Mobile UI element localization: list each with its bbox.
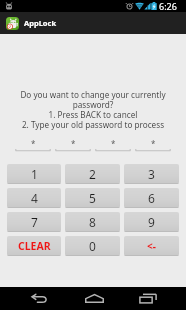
staticText: 7 <box>31 214 38 230</box>
staticText: * <box>151 138 156 149</box>
button[interactable]: 8 <box>65 212 120 232</box>
staticText: * <box>71 138 76 149</box>
staticText: 6 <box>148 190 155 206</box>
button[interactable]: * <box>135 138 171 152</box>
button[interactable]: 6 <box>124 188 179 208</box>
button[interactable]: * <box>55 138 91 152</box>
button[interactable]: 1 <box>7 164 61 184</box>
staticText: 6:26 <box>159 0 177 12</box>
button[interactable]: Recent apps <box>132 287 164 310</box>
button[interactable]: 3 <box>124 164 179 184</box>
button[interactable]: Back <box>23 287 55 310</box>
staticText: 2 <box>89 166 96 182</box>
button[interactable]: * <box>15 138 51 152</box>
staticText: 8 <box>89 214 96 230</box>
button[interactable]: 9 <box>124 212 179 232</box>
button[interactable]: 0 <box>65 236 120 256</box>
staticText: 0 <box>89 238 96 254</box>
staticText: Do you want to change your currently pas… <box>20 89 166 130</box>
button[interactable]: <- <box>124 236 179 256</box>
staticText: CLEAR <box>18 239 51 253</box>
button[interactable]: 5 <box>65 188 120 208</box>
staticText: 3 <box>148 166 155 182</box>
button[interactable]: Home <box>78 287 110 310</box>
staticText: * <box>111 138 116 149</box>
staticText: * <box>31 138 36 149</box>
staticText: 1 <box>31 166 38 182</box>
staticText: 5 <box>89 190 96 206</box>
button[interactable]: 4 <box>7 188 61 208</box>
button[interactable]: CLEAR <box>7 236 61 256</box>
button[interactable]: * <box>95 138 131 152</box>
staticText: 4 <box>31 190 38 206</box>
button[interactable]: 2 <box>65 164 120 184</box>
staticText: <- <box>147 239 156 253</box>
staticText: AppLock <box>24 18 57 28</box>
staticText: 9 <box>148 214 155 230</box>
button[interactable]: 7 <box>7 212 61 232</box>
